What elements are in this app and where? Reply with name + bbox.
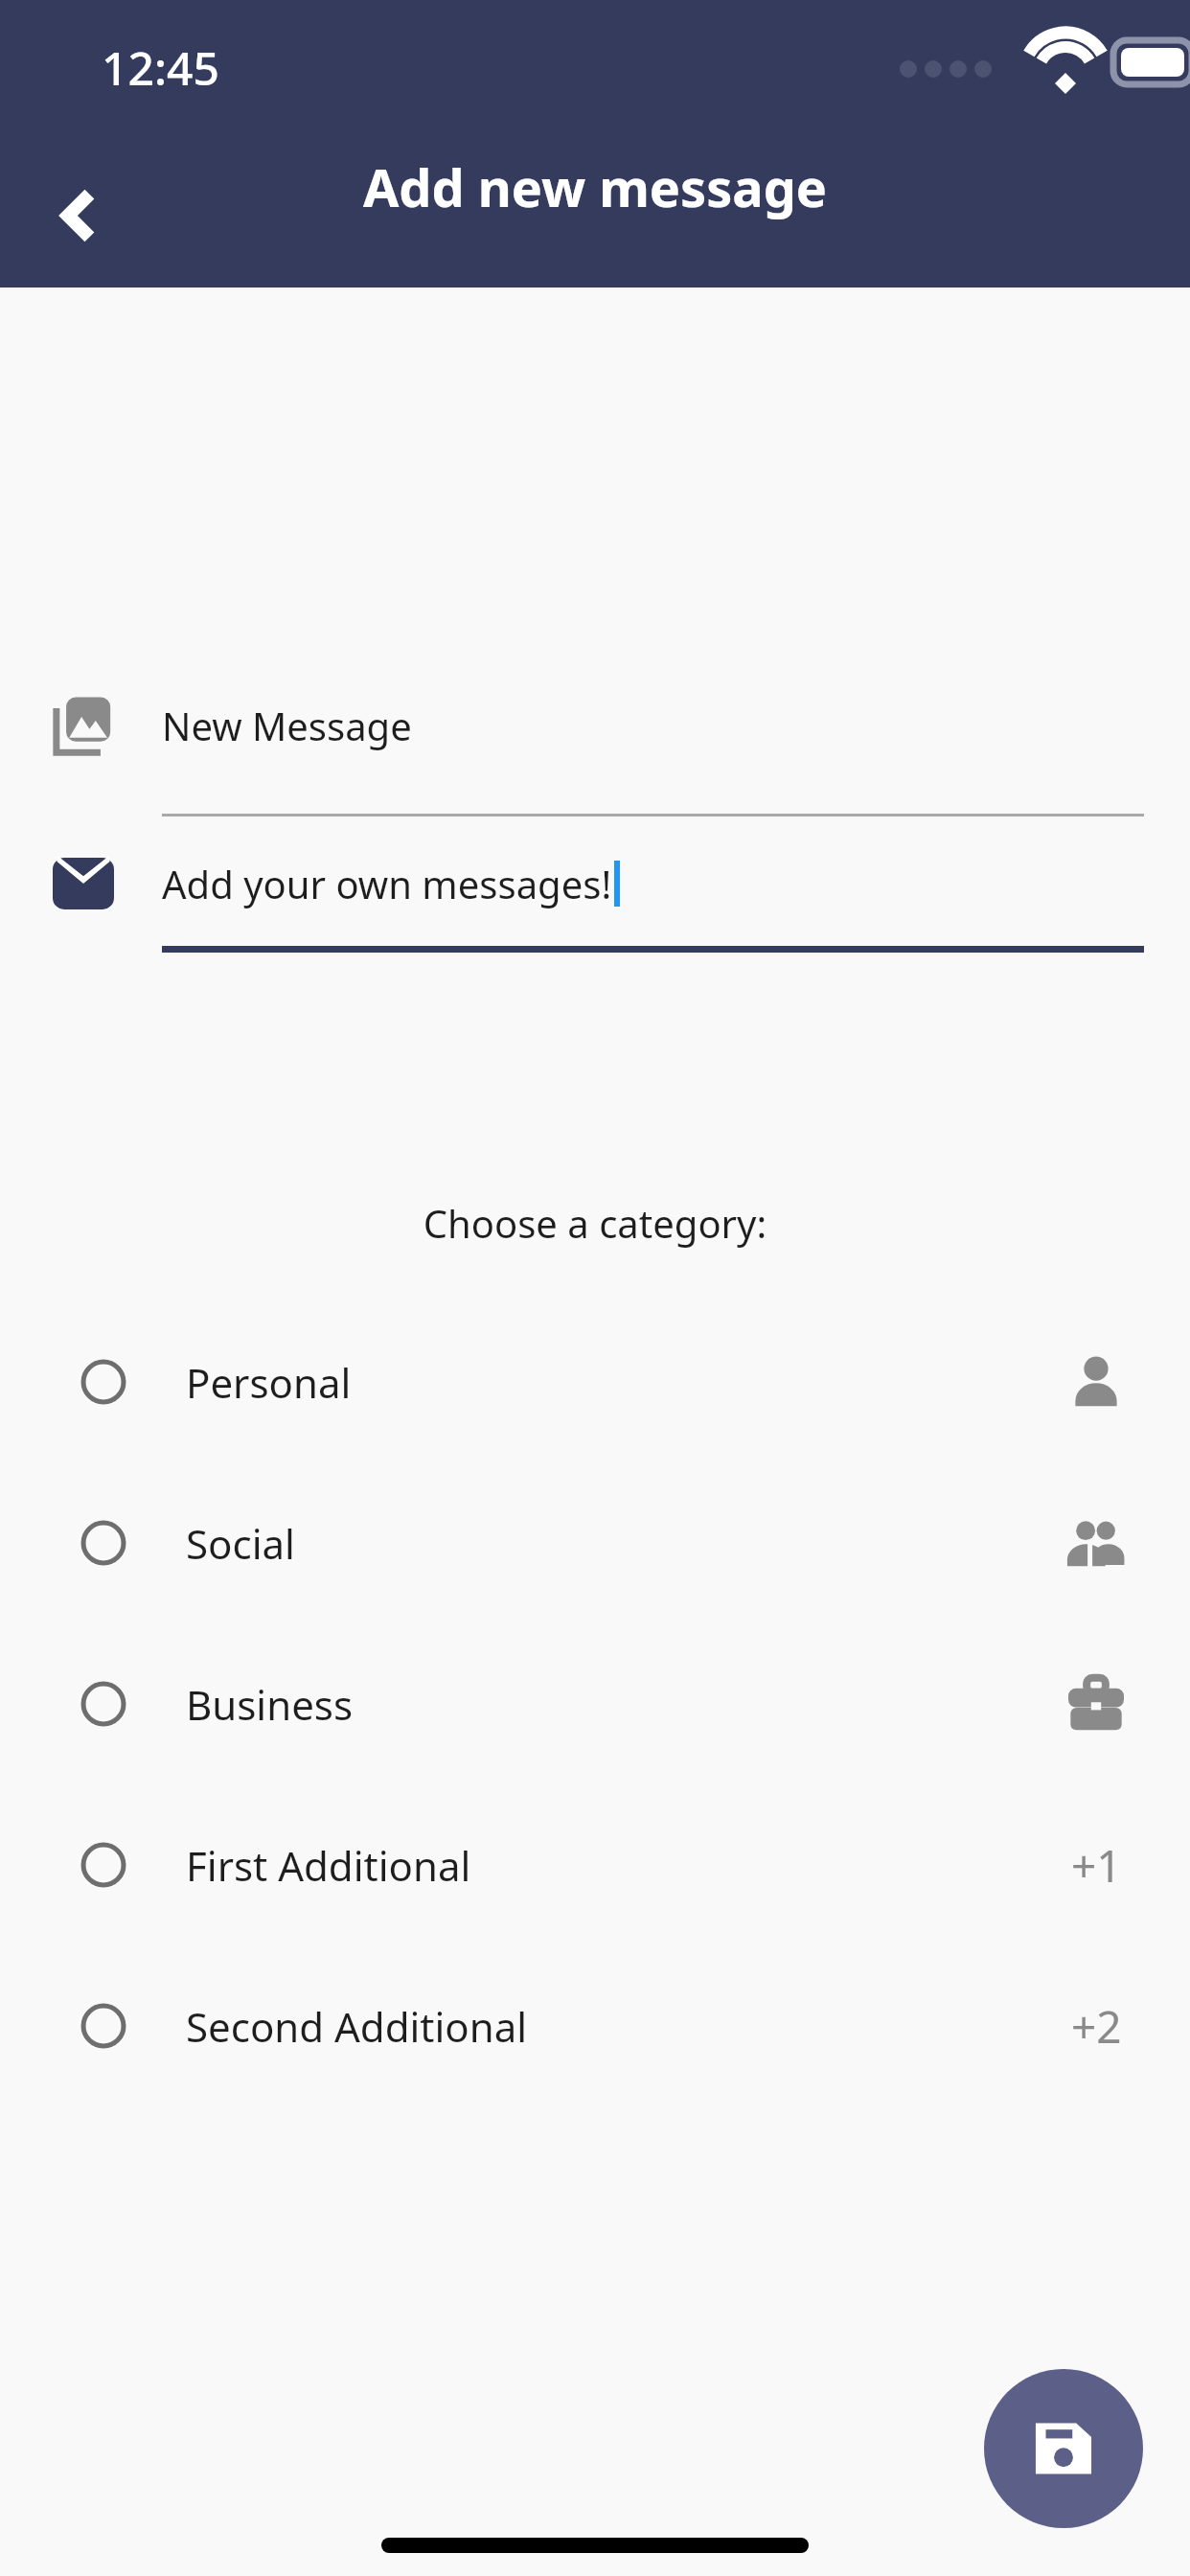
- staticText: Add new message: [363, 151, 828, 222]
- staticText: Business: [186, 1677, 354, 1732]
- button[interactable]: Personal: [0, 1301, 1190, 1462]
- button[interactable]: Business: [0, 1623, 1190, 1784]
- button[interactable]: Social: [0, 1462, 1190, 1623]
- staticText: New Message: [162, 700, 412, 751]
- staticText: Second Additional: [186, 1999, 528, 2054]
- staticText: Add your own messages!: [162, 858, 612, 909]
- button[interactable]: Save: [984, 2369, 1143, 2528]
- button[interactable]: Add your own messages!: [0, 853, 1190, 953]
- button[interactable]: Second Additional: [0, 1945, 1190, 2106]
- button[interactable]: New Message: [0, 695, 1190, 816]
- staticText: 12:45: [102, 36, 219, 99]
- staticText: Personal: [186, 1355, 352, 1410]
- button[interactable]: First Additional: [0, 1784, 1190, 1945]
- staticText: First Additional: [186, 1838, 471, 1893]
- staticText: +2: [1071, 1996, 1122, 2057]
- staticText: Choose a category:: [0, 1197, 1190, 1249]
- button[interactable]: Back: [19, 153, 144, 278]
- staticText: Social: [186, 1516, 295, 1571]
- staticText: +1: [1071, 1835, 1122, 1896]
